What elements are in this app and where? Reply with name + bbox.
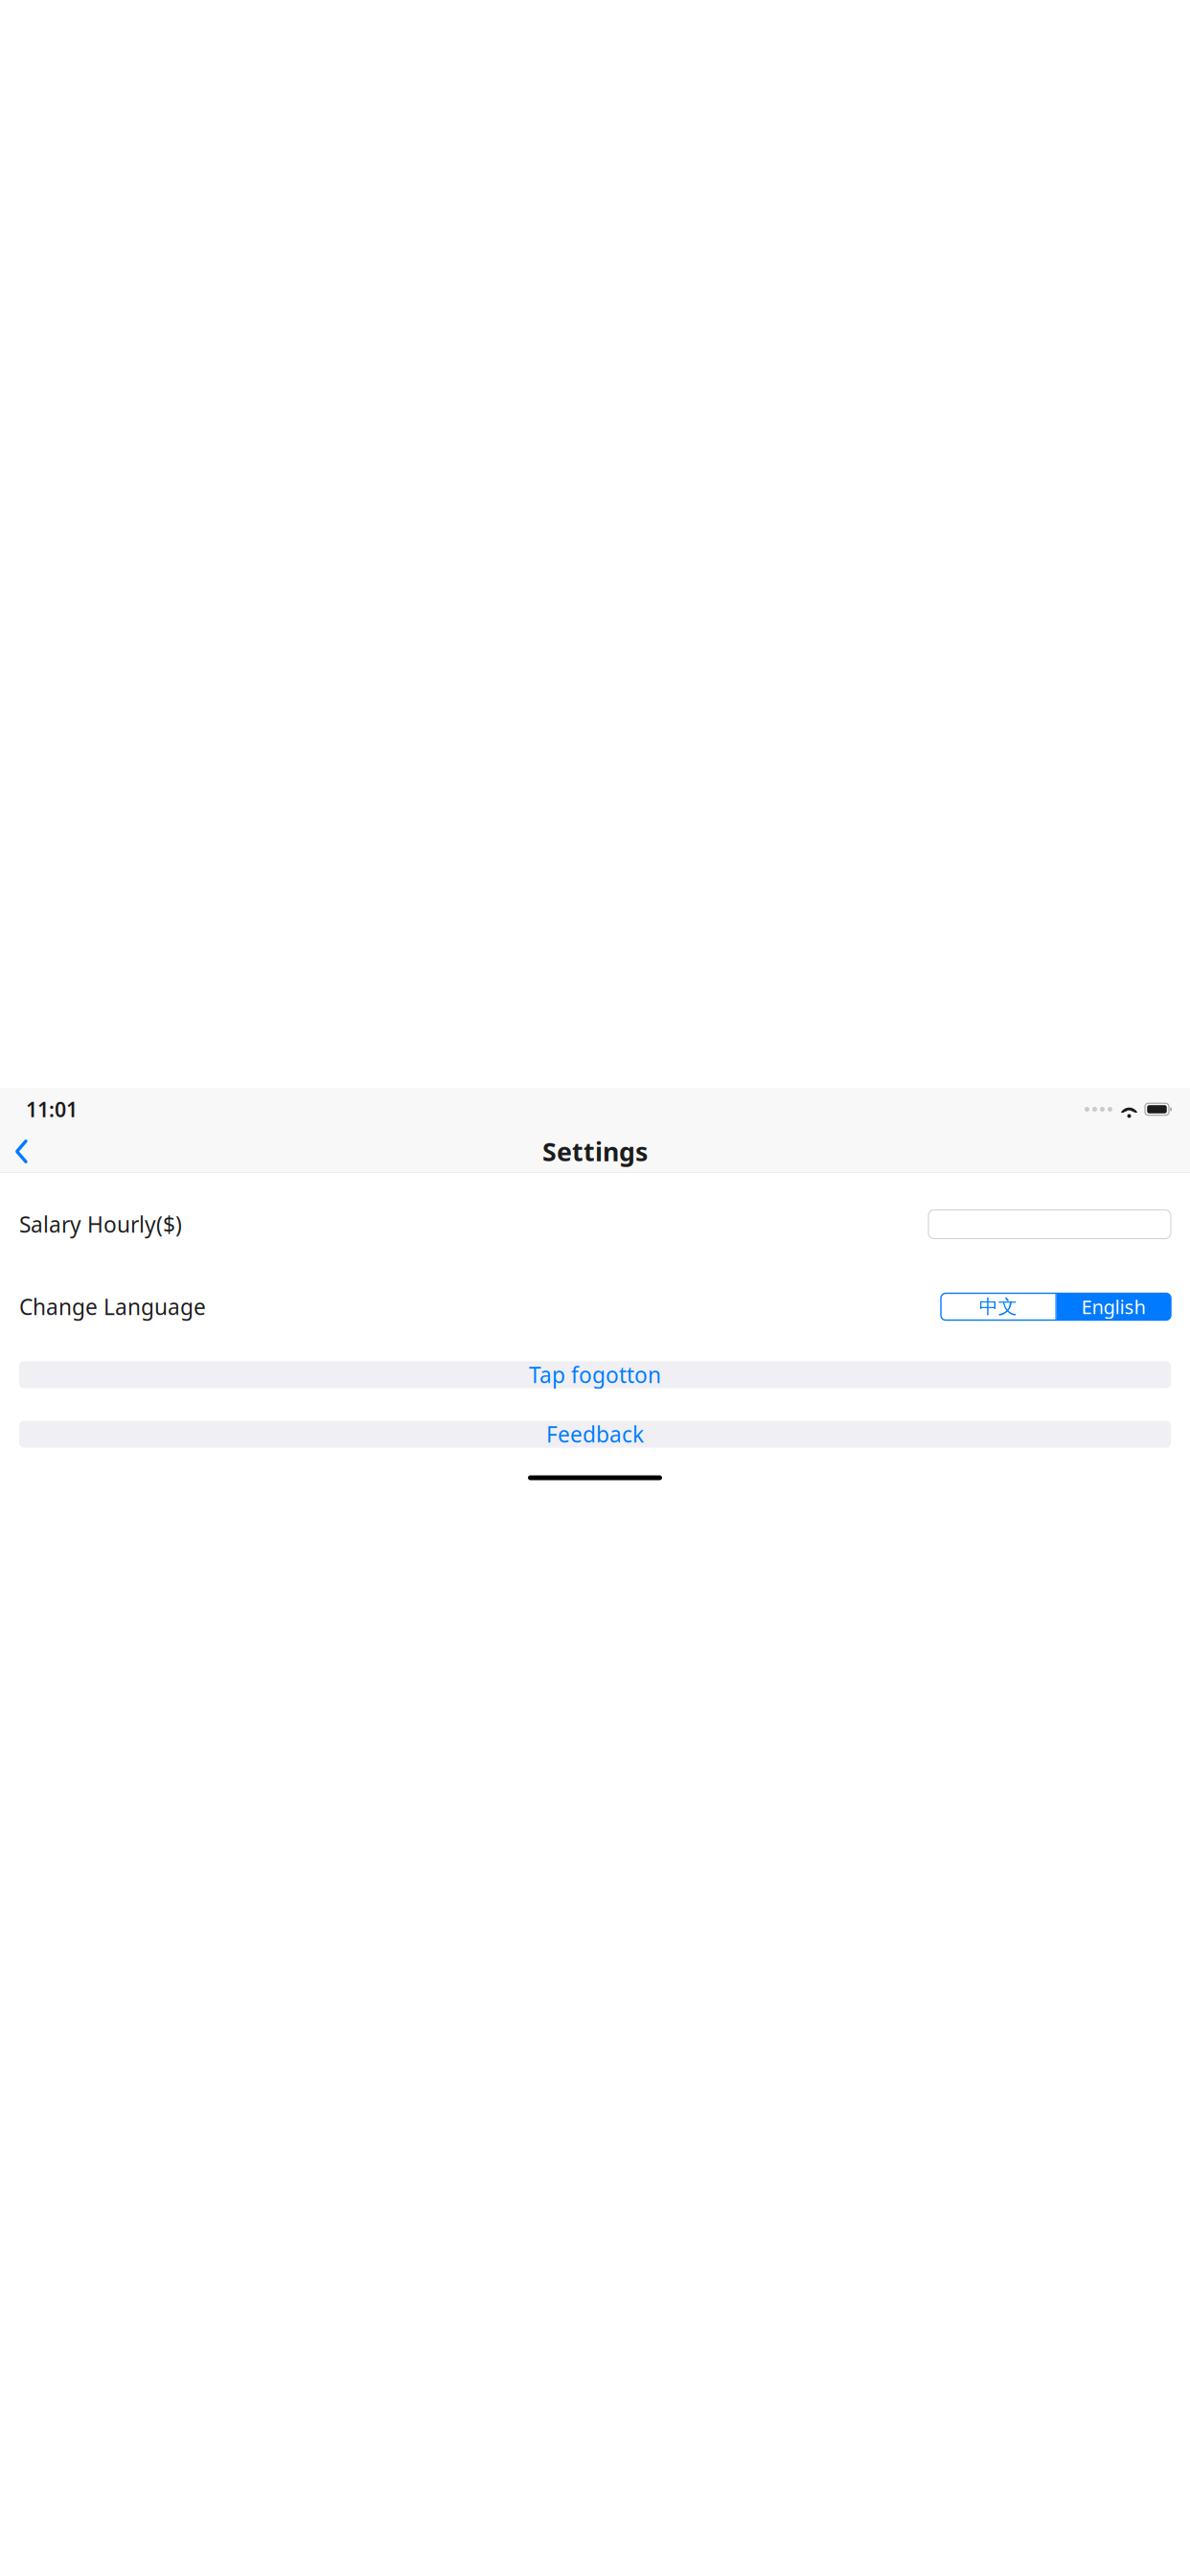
- button[interactable]: Tap fogotton: [19, 1361, 1171, 1388]
- staticText: Change Language: [19, 1292, 206, 1321]
- button[interactable]: 中文: [941, 1293, 1055, 1320]
- staticText: 中文: [979, 1295, 1017, 1318]
- staticText: Salary Hourly($): [19, 1210, 182, 1239]
- button[interactable]: Back: [0, 1130, 41, 1173]
- button[interactable]: Feedback: [19, 1421, 1171, 1448]
- staticText: Settings: [542, 1134, 648, 1168]
- staticText: English: [1082, 1294, 1146, 1319]
- staticText: Feedback: [546, 1420, 644, 1449]
- button[interactable]: Hourly salary amount: [928, 1210, 1171, 1239]
- staticText: 11:01: [26, 1096, 78, 1123]
- staticText: Tap fogotton: [529, 1360, 661, 1389]
- button[interactable]: English: [1056, 1293, 1171, 1320]
